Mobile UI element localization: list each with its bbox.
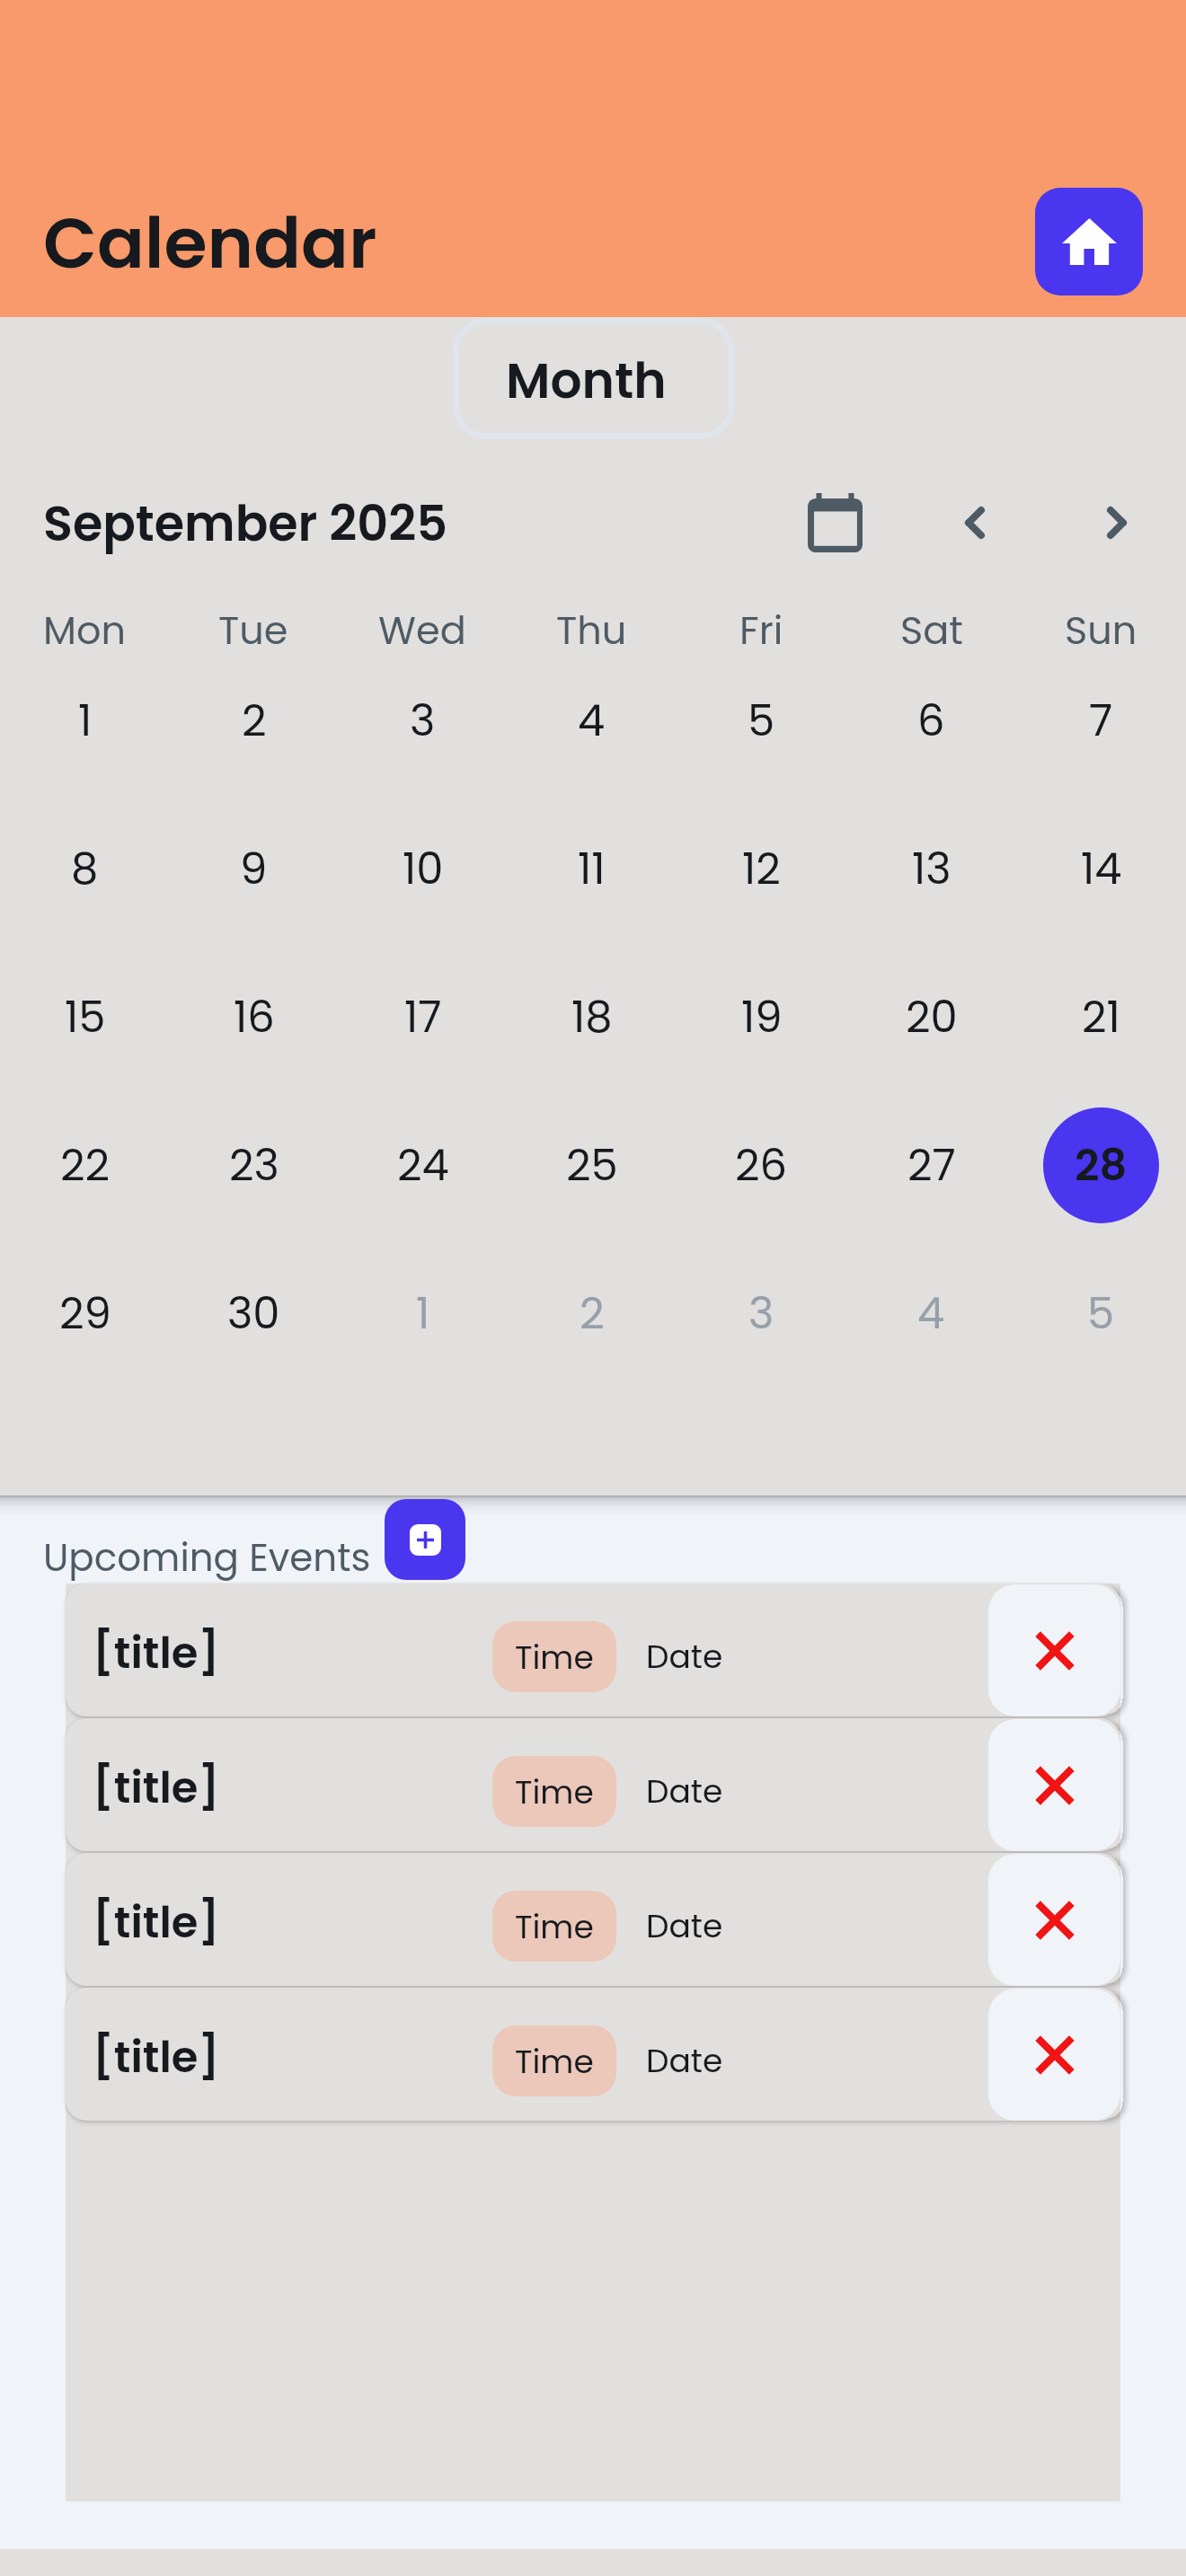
staticText: 6 [917, 691, 945, 751]
staticText: 9 [240, 839, 268, 899]
button[interactable]: 3 [365, 663, 481, 779]
staticText: 1 [416, 1284, 430, 1344]
button[interactable]: 3 [704, 1256, 819, 1372]
staticText: 18 [571, 987, 613, 1047]
staticText: Thu [556, 604, 627, 657]
button[interactable]: Month [453, 318, 734, 439]
staticText: 20 [906, 987, 958, 1047]
staticText: 23 [229, 1135, 279, 1195]
button[interactable]: 7 [1043, 663, 1159, 779]
staticText: 8 [71, 839, 99, 899]
button[interactable]: [title] [66, 1988, 1120, 2121]
button[interactable]: 2 [534, 1256, 650, 1372]
button[interactable]: 28 [1043, 1107, 1159, 1223]
staticText: Calendar [43, 194, 377, 292]
staticText: 11 [578, 839, 606, 899]
staticText: Tue [218, 604, 288, 657]
button[interactable]: Delete event [988, 1719, 1120, 1851]
staticText: 7 [1089, 691, 1113, 751]
button[interactable]: Add event [385, 1499, 465, 1580]
staticText: 21 [1082, 987, 1120, 1047]
button[interactable]: [title] [66, 1853, 1120, 1986]
staticText: Wed [378, 604, 466, 657]
button[interactable]: Delete event [988, 1584, 1120, 1716]
button[interactable]: 13 [873, 811, 989, 927]
staticText: Date [646, 1769, 723, 1813]
button[interactable]: Pick date [790, 475, 881, 570]
staticText: 4 [578, 691, 606, 751]
staticText: Time [515, 1904, 594, 1949]
staticText: 12 [742, 839, 781, 899]
button[interactable]: 11 [534, 811, 650, 927]
button[interactable]: 22 [27, 1107, 143, 1223]
staticText: Date [646, 1903, 723, 1948]
button[interactable]: 24 [365, 1107, 481, 1223]
staticText: 4 [917, 1284, 945, 1344]
staticText: 28 [1075, 1135, 1128, 1195]
button[interactable]: 1 [365, 1256, 481, 1372]
button[interactable]: [title] [66, 1718, 1120, 1851]
button[interactable]: Previous month [939, 487, 1011, 559]
staticText: 19 [741, 987, 783, 1047]
button[interactable]: 26 [704, 1107, 819, 1223]
button[interactable]: 5 [1043, 1256, 1159, 1372]
button[interactable]: 23 [196, 1107, 312, 1223]
staticText: 26 [735, 1135, 788, 1195]
button[interactable]: 4 [534, 663, 650, 779]
button[interactable]: 14 [1043, 811, 1159, 927]
staticText: September 2025 [43, 490, 447, 558]
button[interactable]: 25 [534, 1107, 650, 1223]
button[interactable]: 16 [196, 959, 312, 1075]
staticText: 5 [1087, 1284, 1115, 1344]
staticText: Time [515, 1769, 594, 1814]
staticText: [title] [93, 1623, 220, 1683]
button[interactable]: 5 [704, 663, 819, 779]
staticText: Mon [43, 604, 127, 657]
button[interactable]: Home [1035, 188, 1143, 296]
button[interactable]: 29 [27, 1256, 143, 1372]
button[interactable]: 21 [1043, 959, 1159, 1075]
button[interactable]: 27 [873, 1107, 989, 1223]
button[interactable]: [title] [66, 1584, 1120, 1716]
staticText: Month [506, 346, 667, 415]
staticText: Date [646, 2038, 723, 2083]
staticText: 22 [60, 1135, 111, 1195]
staticText: 29 [59, 1284, 111, 1344]
staticText: Sat [900, 604, 963, 657]
button[interactable]: 18 [534, 959, 650, 1075]
button[interactable]: 17 [365, 959, 481, 1075]
staticText: 3 [748, 1284, 774, 1344]
staticText: 17 [404, 987, 442, 1047]
staticText: 25 [566, 1135, 618, 1195]
staticText: Upcoming Events [43, 1531, 371, 1584]
staticText: Fri [739, 604, 783, 657]
staticText: 14 [1081, 839, 1122, 899]
staticText: Sun [1065, 604, 1137, 657]
staticText: 30 [227, 1284, 280, 1344]
staticText: [title] [93, 2027, 220, 2087]
staticText: Date [646, 1634, 723, 1679]
staticText: 2 [580, 1284, 605, 1344]
button[interactable]: 6 [873, 663, 989, 779]
button[interactable]: Next month [1081, 487, 1153, 559]
button[interactable]: 4 [873, 1256, 989, 1372]
button[interactable]: 12 [704, 811, 819, 927]
button[interactable]: 10 [365, 811, 481, 927]
button[interactable]: 1 [27, 663, 143, 779]
button[interactable]: Delete event [988, 1989, 1120, 2121]
button[interactable]: Delete event [988, 1854, 1120, 1986]
staticText: Time [515, 1635, 594, 1680]
button[interactable]: 2 [196, 663, 312, 779]
button[interactable]: 19 [704, 959, 819, 1075]
button[interactable]: 20 [873, 959, 989, 1075]
button[interactable]: 8 [27, 811, 143, 927]
staticText: Time [515, 2039, 594, 2084]
staticText: [title] [93, 1758, 220, 1818]
staticText: 15 [65, 987, 106, 1047]
staticText: [title] [93, 1892, 220, 1953]
button[interactable]: 15 [27, 959, 143, 1075]
button[interactable]: 9 [196, 811, 312, 927]
staticText: 13 [912, 839, 951, 899]
staticText: 27 [907, 1135, 956, 1195]
button[interactable]: 30 [196, 1256, 312, 1372]
